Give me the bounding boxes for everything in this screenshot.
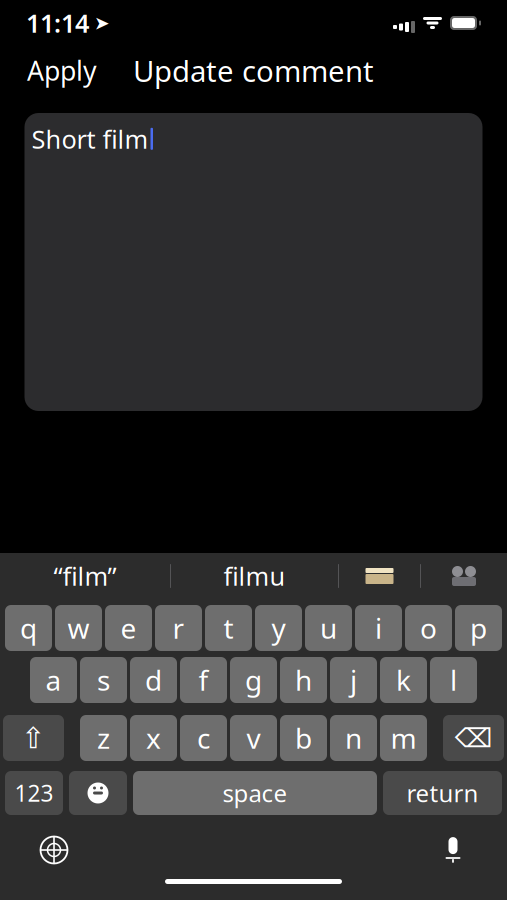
button[interactable]: space	[133, 771, 377, 815]
staticText: w	[67, 609, 89, 647]
staticText: v	[246, 719, 260, 757]
button[interactable]: y	[255, 605, 302, 651]
staticText: c	[197, 719, 210, 757]
staticText: y	[271, 609, 285, 647]
button[interactable]: w	[55, 605, 102, 651]
button[interactable]: t	[205, 605, 252, 651]
staticText: b	[295, 719, 312, 757]
button[interactable]: h	[280, 657, 327, 703]
staticText: m	[390, 719, 416, 757]
staticText: k	[396, 661, 411, 699]
staticText: space	[222, 777, 287, 809]
button[interactable]: l	[430, 657, 477, 703]
staticText: 123	[14, 778, 53, 808]
staticText: Apply	[27, 53, 97, 88]
staticText: t	[223, 609, 233, 647]
staticText: ⌫	[454, 723, 492, 753]
staticText: “film”	[53, 559, 116, 593]
staticText: h	[295, 661, 312, 699]
staticText: f	[198, 661, 208, 699]
button[interactable]: Shift	[3, 715, 64, 761]
staticText: p	[470, 609, 487, 647]
button[interactable]: j	[330, 657, 377, 703]
button[interactable]: filmu	[171, 553, 338, 599]
staticText: x	[146, 719, 161, 757]
staticText: 11:14	[26, 6, 89, 40]
button[interactable]: g	[230, 657, 277, 703]
button[interactable]: a	[30, 657, 77, 703]
button[interactable]: Short film	[24, 113, 482, 411]
button[interactable]: s	[80, 657, 127, 703]
button[interactable]: x	[130, 715, 177, 761]
button[interactable]: p	[455, 605, 502, 651]
button[interactable]: Emoji keyboard	[69, 771, 127, 815]
staticText: e	[120, 609, 136, 647]
button[interactable]: Film emoji	[339, 553, 420, 599]
staticText: z	[97, 719, 110, 757]
button[interactable]: m	[380, 715, 427, 761]
staticText: l	[450, 661, 457, 699]
button[interactable]: i	[355, 605, 402, 651]
button[interactable]: Movie camera emoji	[421, 553, 507, 599]
staticText: j	[350, 661, 357, 699]
staticText: a	[45, 661, 61, 699]
button[interactable]: u	[305, 605, 352, 651]
button[interactable]: Next keyboard	[33, 829, 75, 871]
button[interactable]: c	[180, 715, 227, 761]
button[interactable]: 123	[5, 771, 63, 815]
staticText: d	[145, 661, 162, 699]
staticText: s	[97, 661, 110, 699]
staticText: u	[320, 609, 337, 647]
staticText: q	[20, 609, 37, 647]
button[interactable]: Dictation	[432, 829, 474, 871]
staticText: g	[245, 661, 262, 699]
button[interactable]: z	[80, 715, 127, 761]
button[interactable]: q	[5, 605, 52, 651]
staticText: ⇧	[21, 721, 46, 755]
button[interactable]: “film”	[0, 553, 170, 599]
staticText: o	[420, 609, 437, 647]
staticText: Short film	[31, 122, 148, 156]
button[interactable]: d	[130, 657, 177, 703]
button[interactable]: n	[330, 715, 377, 761]
button[interactable]: Delete	[443, 715, 504, 761]
staticText: i	[375, 609, 382, 647]
staticText: n	[345, 719, 362, 757]
staticText: return	[406, 777, 478, 809]
button[interactable]: e	[105, 605, 152, 651]
button[interactable]: b	[280, 715, 327, 761]
staticText: filmu	[223, 559, 285, 593]
button[interactable]: return	[383, 771, 502, 815]
staticText: ➤	[94, 12, 110, 34]
staticText: r	[172, 609, 184, 647]
button[interactable]: o	[405, 605, 452, 651]
staticText: Update comment	[133, 51, 374, 90]
button[interactable]: Apply	[19, 45, 105, 96]
button[interactable]: f	[180, 657, 227, 703]
button[interactable]: r	[155, 605, 202, 651]
button[interactable]: v	[230, 715, 277, 761]
button[interactable]: k	[380, 657, 427, 703]
